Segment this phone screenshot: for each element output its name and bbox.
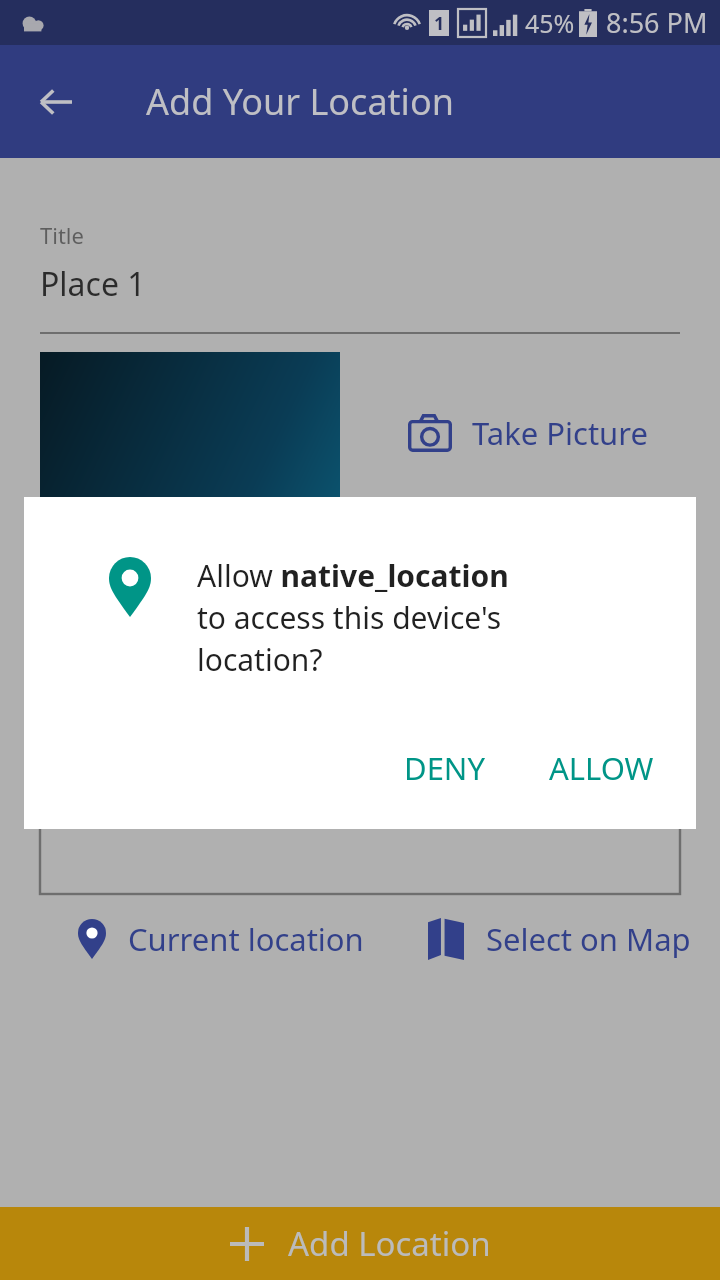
button[interactable] bbox=[40, 700, 680, 894]
staticText: ALLOW bbox=[549, 747, 654, 789]
staticText: Place 1 bbox=[40, 262, 146, 306]
staticText: 8:56 PM bbox=[606, 4, 708, 41]
button[interactable]: ALLOW bbox=[533, 737, 670, 799]
button[interactable] bbox=[40, 352, 340, 652]
staticText: Current location bbox=[128, 918, 364, 960]
staticText: Add Your Location bbox=[146, 77, 454, 126]
button[interactable]: Select on Map bbox=[428, 918, 691, 960]
staticText: DENY bbox=[404, 747, 485, 789]
button[interactable]: DENY bbox=[388, 737, 501, 799]
button[interactable]: Take Picture bbox=[408, 412, 648, 454]
staticText: Select on Map bbox=[486, 918, 691, 960]
button[interactable]: Current location bbox=[78, 918, 364, 960]
button[interactable]: Add Location bbox=[0, 1207, 720, 1280]
staticText: Allow native_location to access this dev… bbox=[197, 555, 509, 680]
staticText: Add Location bbox=[288, 1221, 491, 1266]
button[interactable]: Back bbox=[28, 74, 84, 130]
staticText: Take Picture bbox=[472, 412, 648, 454]
staticText: 1 bbox=[434, 11, 445, 36]
staticText: 45% bbox=[525, 6, 575, 40]
staticText: Title bbox=[40, 220, 84, 250]
